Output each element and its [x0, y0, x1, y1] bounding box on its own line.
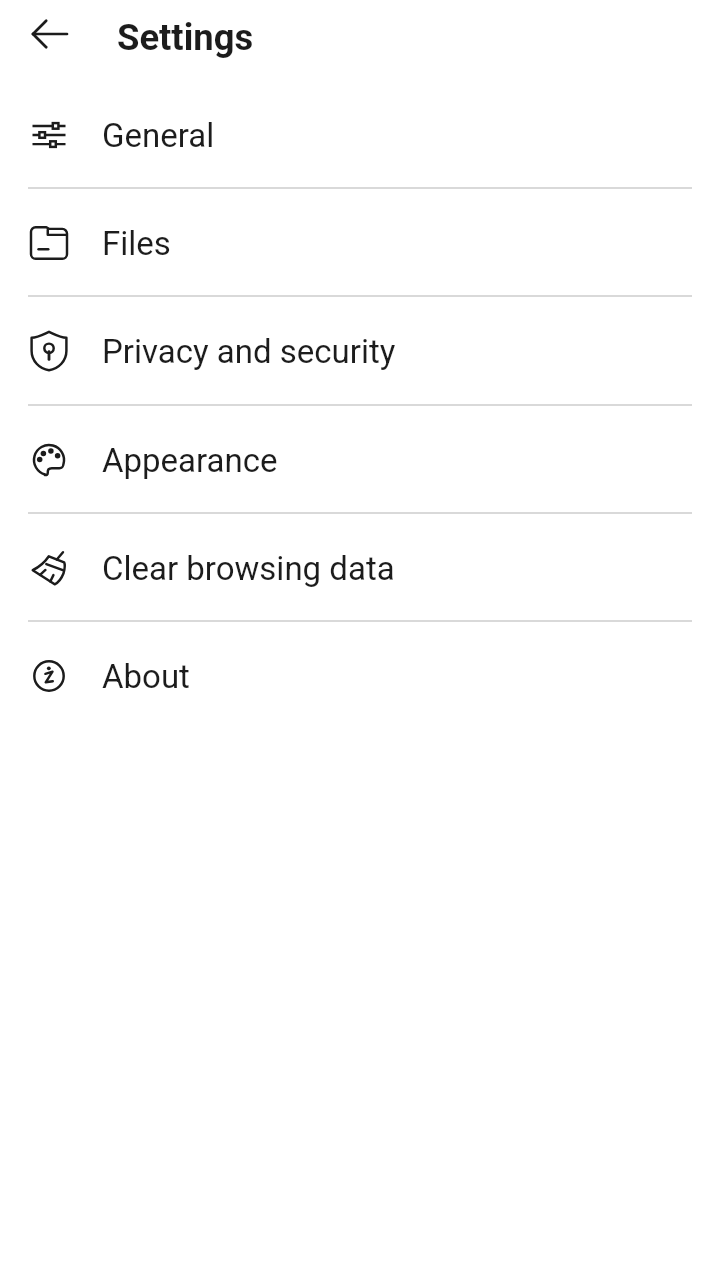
button[interactable]: Privacy and security — [0, 296, 720, 404]
button[interactable]: About — [0, 621, 720, 729]
button[interactable]: Files — [0, 188, 720, 296]
staticText: Settings — [117, 16, 254, 59]
button[interactable]: Back — [26, 10, 74, 58]
staticText: Privacy and security — [102, 332, 396, 371]
staticText: About — [102, 657, 190, 696]
staticText: General — [102, 116, 215, 155]
staticText: Files — [102, 224, 171, 263]
staticText: Appearance — [102, 441, 278, 480]
button[interactable]: Clear browsing data — [0, 513, 720, 621]
button[interactable]: General — [0, 80, 720, 188]
button[interactable]: Appearance — [0, 405, 720, 513]
staticText: Clear browsing data — [102, 549, 395, 588]
